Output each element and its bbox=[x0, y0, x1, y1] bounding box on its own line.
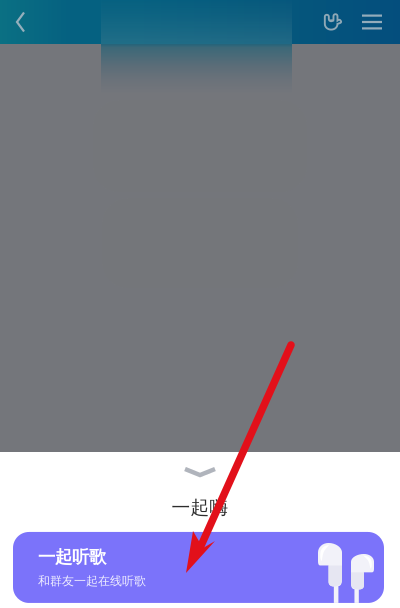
button[interactable]: Back bbox=[0, 0, 40, 44]
button[interactable]: Collapse bbox=[155, 467, 245, 477]
button[interactable]: 一起听歌 bbox=[13, 532, 384, 603]
staticText: 一起嗨 bbox=[171, 496, 228, 519]
button[interactable]: Rock bbox=[313, 0, 353, 44]
staticText: 和群友一起在线听歌 bbox=[38, 574, 146, 588]
button[interactable]: Menu bbox=[353, 0, 391, 44]
staticText: 一起听歌 bbox=[38, 546, 106, 568]
